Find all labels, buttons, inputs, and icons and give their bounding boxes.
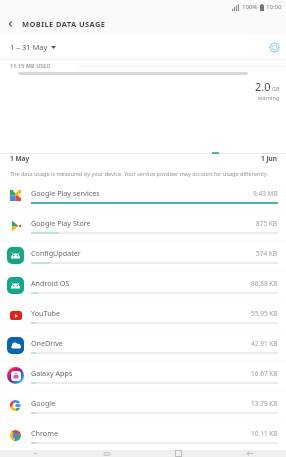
button[interactable]: Home <box>142 450 214 457</box>
button[interactable]: Recents <box>71 450 142 457</box>
button[interactable]: Google <box>0 391 286 420</box>
staticText: 86.88 KB <box>251 279 278 288</box>
staticText: 42.91 KB <box>251 339 278 348</box>
staticText: 16.67 KB <box>251 369 278 378</box>
staticText: 10.11 KB <box>251 429 278 438</box>
staticText: Google Play services <box>31 188 100 198</box>
staticText: 11.15 MB USED <box>10 62 51 69</box>
button[interactable]: Keyboard <box>0 450 71 457</box>
staticText: ConfigUpdater <box>31 248 81 258</box>
staticText: 55.95 KB <box>251 309 278 318</box>
staticText: 13.79 KB <box>251 399 278 408</box>
button[interactable]: Settings <box>262 35 286 59</box>
button[interactable]: Back <box>0 13 22 35</box>
staticText: Chrome <box>31 428 58 438</box>
staticText: The data usage is measured by your devic… <box>10 170 268 177</box>
staticText: 1 – 31 May <box>10 42 48 52</box>
button[interactable]: 1 – 31 May <box>0 39 62 55</box>
staticText: OneDrive <box>31 338 63 348</box>
staticText: Galaxy Apps <box>31 368 73 378</box>
button[interactable]: ConfigUpdater <box>0 241 286 270</box>
button[interactable]: OneDrive <box>0 331 286 360</box>
staticText: 1 May <box>10 154 30 163</box>
button[interactable]: Chrome <box>0 421 286 450</box>
staticText: Android OS <box>31 278 70 288</box>
staticText: 574 KB <box>256 249 278 258</box>
button[interactable]: Back <box>214 450 286 457</box>
staticText: 9.43 MB <box>253 189 278 198</box>
staticText: 2.0 <box>255 79 271 94</box>
button[interactable]: Android OS <box>0 271 286 300</box>
staticText: GB <box>272 85 280 92</box>
staticText: warning <box>258 94 280 101</box>
staticText: MOBILE DATA USAGE <box>22 19 106 29</box>
staticText: YouTube <box>31 308 61 318</box>
staticText: Google Play Store <box>31 218 91 228</box>
staticText: 875 KB <box>256 219 278 228</box>
staticText: 10:00 <box>266 3 282 11</box>
staticText: Google <box>31 398 56 408</box>
button[interactable]: YouTube <box>0 301 286 330</box>
staticText: 100% <box>242 3 258 11</box>
button[interactable]: Google Play Store <box>0 211 286 240</box>
button[interactable]: Google Play services <box>0 181 286 210</box>
staticText: 1 Jun <box>261 154 278 163</box>
button[interactable]: Galaxy Apps <box>0 361 286 390</box>
